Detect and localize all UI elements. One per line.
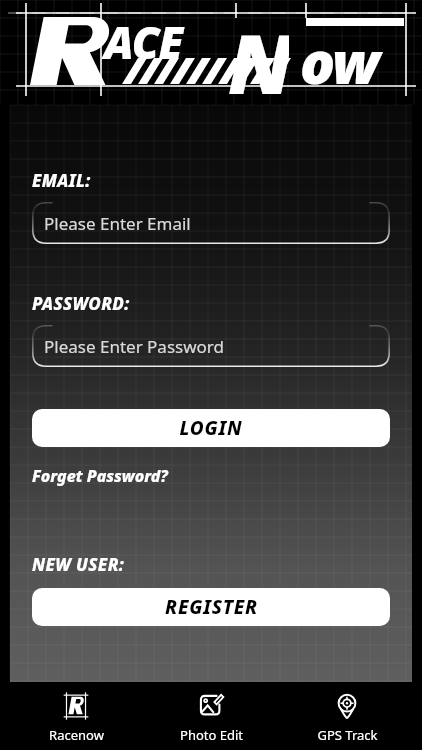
button[interactable]: Please Enter Email xyxy=(32,202,390,244)
staticText: LOGIN xyxy=(179,415,243,441)
button[interactable]: Please Enter Password xyxy=(32,325,390,367)
staticText: GPS Track xyxy=(317,726,378,744)
button[interactable]: Photo Edit xyxy=(151,682,271,750)
button[interactable]: LOGIN xyxy=(32,409,390,447)
button[interactable]: REGISTER xyxy=(32,588,390,626)
staticText: Forget Password? xyxy=(32,465,168,487)
button[interactable]: GPS Track xyxy=(287,682,407,750)
staticText: PASSWORD: xyxy=(32,292,130,315)
staticText: ACE xyxy=(104,12,183,72)
staticText: ow xyxy=(300,22,378,101)
staticText: NEW USER: xyxy=(32,553,125,576)
staticText: REGISTER xyxy=(165,594,258,620)
staticText: Please Enter Password xyxy=(44,335,224,358)
button[interactable]: Racenow xyxy=(16,682,136,750)
button[interactable]: Forget Password? xyxy=(32,465,168,487)
staticText: Photo Edit xyxy=(180,726,243,744)
staticText: Racenow xyxy=(49,726,104,744)
staticText: Please Enter Email xyxy=(44,212,191,235)
staticText: EMAIL: xyxy=(32,169,91,192)
staticText: N xyxy=(228,6,289,111)
